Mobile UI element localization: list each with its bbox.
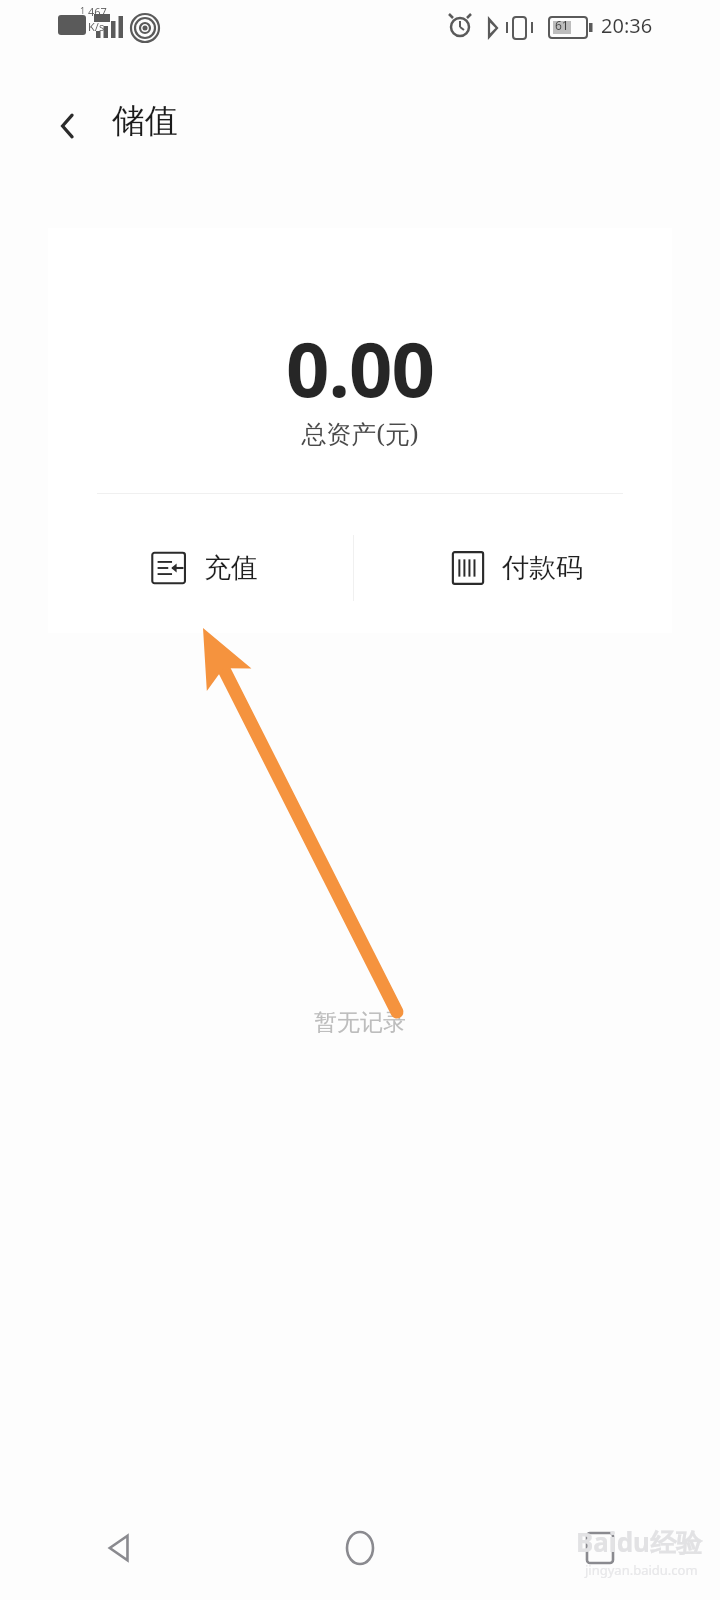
staticText: Baidu经验 — [576, 1524, 702, 1560]
staticText: 付款码 — [502, 551, 583, 585]
button[interactable]: Back — [0, 1496, 240, 1600]
button[interactable]: Home — [240, 1496, 480, 1600]
button[interactable]: Recents — [480, 1496, 720, 1600]
staticText: 储值 — [112, 100, 178, 142]
staticText: 总资产(元) — [48, 416, 672, 450]
staticText: 充值 — [204, 551, 258, 585]
button[interactable]: 付款码 — [360, 518, 672, 618]
staticText: 暂无记录 — [0, 1008, 720, 1037]
staticText: 467 — [88, 4, 107, 19]
staticText: 0.00 — [48, 316, 672, 420]
staticText: 1 — [80, 4, 86, 16]
button[interactable]: Back — [32, 90, 104, 162]
staticText: K/s — [88, 19, 105, 34]
staticText: 20:36 — [601, 12, 653, 39]
button[interactable]: 充值 — [48, 518, 360, 618]
staticText: 61 — [555, 17, 569, 33]
staticText: jingyan.baidu.com — [585, 1561, 698, 1579]
